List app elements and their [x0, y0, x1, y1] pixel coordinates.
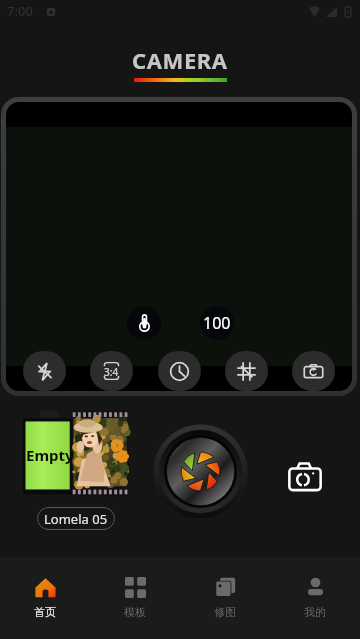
- staticText: 修图: [214, 605, 236, 619]
- button[interactable]: Film roll Lomela 05: [18, 411, 130, 496]
- staticText: CAMERA: [132, 45, 228, 75]
- button[interactable]: Grid off: [225, 351, 268, 391]
- button[interactable]: 我的: [270, 557, 360, 639]
- button[interactable]: Switch camera: [287, 458, 323, 494]
- staticText: Lomela 05: [44, 510, 108, 528]
- staticText: Empty: [26, 445, 74, 465]
- button[interactable]: 修图: [180, 557, 270, 639]
- staticText: 7:00: [7, 2, 33, 20]
- button[interactable]: Timer: [158, 351, 201, 391]
- button[interactable]: Temperature: [127, 306, 161, 340]
- button[interactable]: 首页: [0, 557, 90, 639]
- staticText: 模板: [124, 605, 146, 619]
- staticText: 我的: [304, 605, 326, 619]
- button[interactable]: Camera settings: [292, 351, 335, 391]
- button[interactable]: Shutter: [153, 424, 248, 519]
- button[interactable]: Aspect ratio 3 by 4: [90, 351, 133, 391]
- staticText: 首页: [34, 605, 56, 619]
- button[interactable]: 100: [200, 306, 234, 340]
- button[interactable]: Flash off: [23, 351, 66, 391]
- button[interactable]: Lomela 05: [37, 507, 115, 530]
- staticText: 3:4: [104, 365, 119, 379]
- button[interactable]: 模板: [90, 557, 180, 639]
- staticText: 100: [203, 312, 231, 334]
